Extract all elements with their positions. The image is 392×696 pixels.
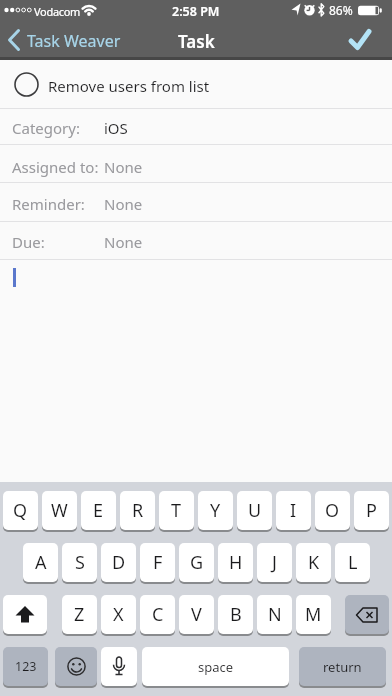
- staticText: F: [153, 550, 163, 575]
- staticText: None: [104, 157, 143, 177]
- button[interactable]: Due:: [0, 222, 392, 260]
- button[interactable]: Q: [3, 491, 38, 530]
- staticText: 86%: [329, 2, 353, 18]
- button[interactable]: U: [237, 491, 272, 530]
- staticText: Category:: [12, 118, 80, 138]
- button[interactable]: H: [218, 543, 253, 582]
- staticText: T: [171, 498, 182, 523]
- button[interactable]: space: [142, 647, 289, 686]
- button[interactable]: N: [257, 595, 292, 634]
- button[interactable]: P: [354, 491, 389, 530]
- staticText: None: [104, 194, 143, 214]
- button[interactable]: G: [179, 543, 214, 582]
- staticText: D: [112, 550, 126, 575]
- staticText: Task: [178, 30, 215, 53]
- staticText: U: [248, 498, 262, 523]
- button[interactable]: 123: [3, 647, 48, 686]
- button[interactable]: Category:: [0, 108, 392, 146]
- button[interactable]: Y: [198, 491, 233, 530]
- staticText: 2:58 PM: [172, 3, 220, 20]
- staticText: W: [51, 498, 68, 523]
- button[interactable]: C: [140, 595, 175, 634]
- staticText: space: [198, 658, 234, 676]
- staticText: V: [191, 602, 202, 627]
- staticText: R: [132, 498, 144, 523]
- staticText: Task Weaver: [27, 30, 121, 52]
- staticText: H: [229, 550, 243, 575]
- button[interactable]: V: [179, 595, 214, 634]
- button[interactable]: O: [315, 491, 350, 530]
- staticText: iOS: [104, 118, 128, 138]
- staticText: I: [290, 498, 297, 523]
- button[interactable]: J: [257, 543, 292, 582]
- staticText: L: [348, 550, 358, 575]
- button[interactable]: [340, 22, 384, 58]
- button[interactable]: F: [140, 543, 175, 582]
- button[interactable]: K: [296, 543, 331, 582]
- staticText: E: [93, 498, 104, 523]
- button[interactable]: M: [296, 595, 331, 634]
- button[interactable]: B: [218, 595, 253, 634]
- staticText: return: [323, 658, 362, 676]
- staticText: B: [230, 602, 242, 627]
- staticText: K: [308, 550, 320, 575]
- staticText: Vodacom: [34, 4, 81, 19]
- staticText: Assigned to:: [12, 157, 99, 177]
- staticText: Z: [74, 602, 85, 627]
- button[interactable]: [55, 647, 97, 686]
- button[interactable]: Assigned to:: [0, 147, 392, 185]
- button[interactable]: X: [101, 595, 136, 634]
- button[interactable]: S: [62, 543, 97, 582]
- button[interactable]: [345, 595, 389, 634]
- staticText: Remove users from list: [48, 76, 210, 96]
- staticText: C: [152, 602, 164, 627]
- staticText: Due:: [12, 232, 45, 252]
- button[interactable]: Reminder:: [0, 184, 392, 222]
- staticText: A: [35, 550, 47, 575]
- staticText: Reminder:: [12, 194, 85, 214]
- staticText: Y: [210, 498, 221, 523]
- staticText: G: [190, 550, 204, 575]
- button[interactable]: L: [335, 543, 370, 582]
- button[interactable]: Remove users from list: [0, 61, 392, 108]
- button[interactable]: T: [159, 491, 194, 530]
- staticText: J: [272, 550, 277, 575]
- button[interactable]: A: [23, 543, 58, 582]
- staticText: P: [366, 498, 377, 523]
- staticText: Q: [13, 498, 28, 523]
- staticText: X: [113, 602, 124, 627]
- staticText: M: [305, 602, 322, 627]
- button[interactable]: W: [42, 491, 77, 530]
- button[interactable]: Task Weaver: [4, 24, 154, 56]
- staticText: None: [104, 232, 143, 252]
- button[interactable]: D: [101, 543, 136, 582]
- button[interactable]: E: [81, 491, 116, 530]
- staticText: S: [75, 550, 85, 575]
- button[interactable]: [101, 647, 137, 686]
- staticText: O: [325, 498, 340, 523]
- staticText: N: [268, 602, 282, 627]
- staticText: 123: [15, 658, 37, 675]
- button[interactable]: Z: [62, 595, 97, 634]
- button[interactable]: R: [120, 491, 155, 530]
- button[interactable]: return: [299, 647, 386, 686]
- button[interactable]: I: [276, 491, 311, 530]
- button[interactable]: [3, 595, 47, 634]
